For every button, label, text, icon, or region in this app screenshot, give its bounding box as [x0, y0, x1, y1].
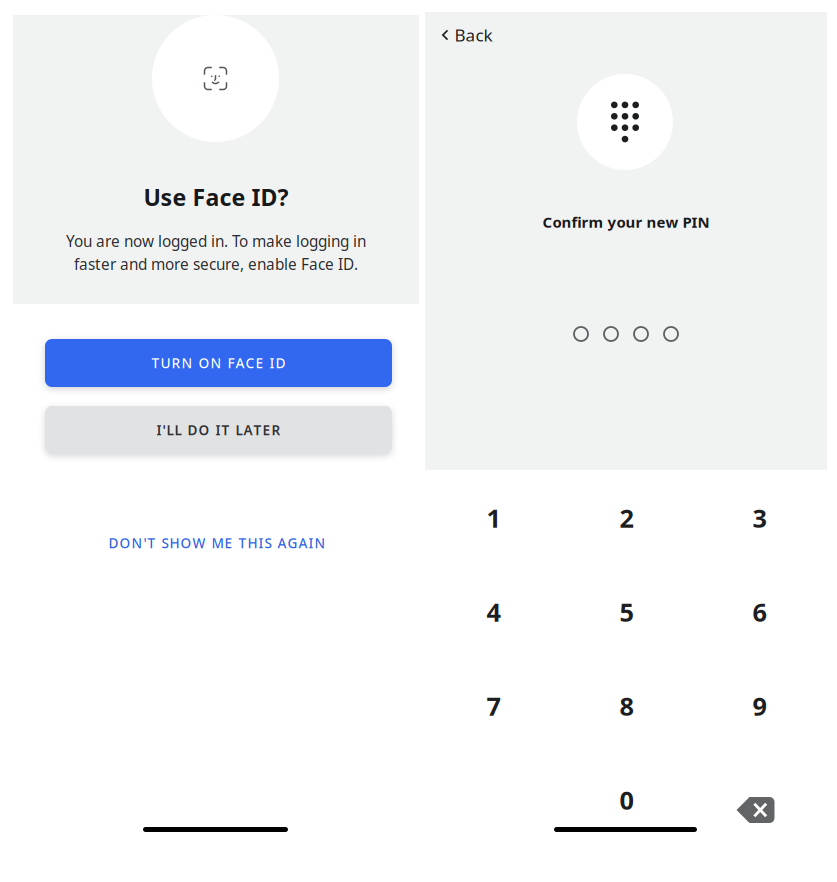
button[interactable]: D O N ' T S H O W M E T H I S A G A I N: [67, 527, 367, 559]
button[interactable]: 6: [693, 565, 826, 659]
staticText: 8: [619, 689, 633, 723]
staticText: 0: [619, 783, 633, 817]
staticText: 3: [752, 501, 766, 535]
staticText: 5: [619, 595, 633, 629]
button[interactable]: 9: [693, 659, 826, 753]
staticText: faster and more secure, enable Face ID.: [74, 254, 358, 274]
button[interactable]: 1: [427, 471, 560, 565]
button[interactable]: 5: [560, 565, 693, 659]
staticText: T U R N O N F A C E I D: [151, 354, 285, 372]
button[interactable]: 0: [560, 753, 693, 847]
staticText: You are now logged in. To make logging i…: [66, 231, 366, 251]
button[interactable]: Back: [425, 18, 504, 52]
button[interactable]: Delete: [693, 753, 826, 847]
staticText: 7: [486, 689, 500, 723]
button[interactable]: I ' L L D O I T L A T E R: [45, 406, 392, 454]
button[interactable]: T U R N O N F A C E I D: [45, 339, 392, 387]
staticText: 2: [619, 501, 633, 535]
staticText: D O N ' T S H O W M E T H I S A G A I N: [108, 534, 325, 552]
button[interactable]: 4: [427, 565, 560, 659]
button[interactable]: 3: [693, 471, 826, 565]
staticText: 6: [752, 595, 766, 629]
staticText: 9: [752, 689, 766, 723]
staticText: Confirm your new PIN: [542, 212, 709, 232]
button[interactable]: 7: [427, 659, 560, 753]
staticText: I ' L L D O I T L A T E R: [156, 421, 280, 439]
staticText: Use Face ID?: [143, 181, 288, 213]
staticText: 1: [486, 501, 500, 535]
button[interactable]: 8: [560, 659, 693, 753]
staticText: 4: [486, 595, 500, 629]
button[interactable]: 2: [560, 471, 693, 565]
staticText: Back: [454, 23, 492, 47]
